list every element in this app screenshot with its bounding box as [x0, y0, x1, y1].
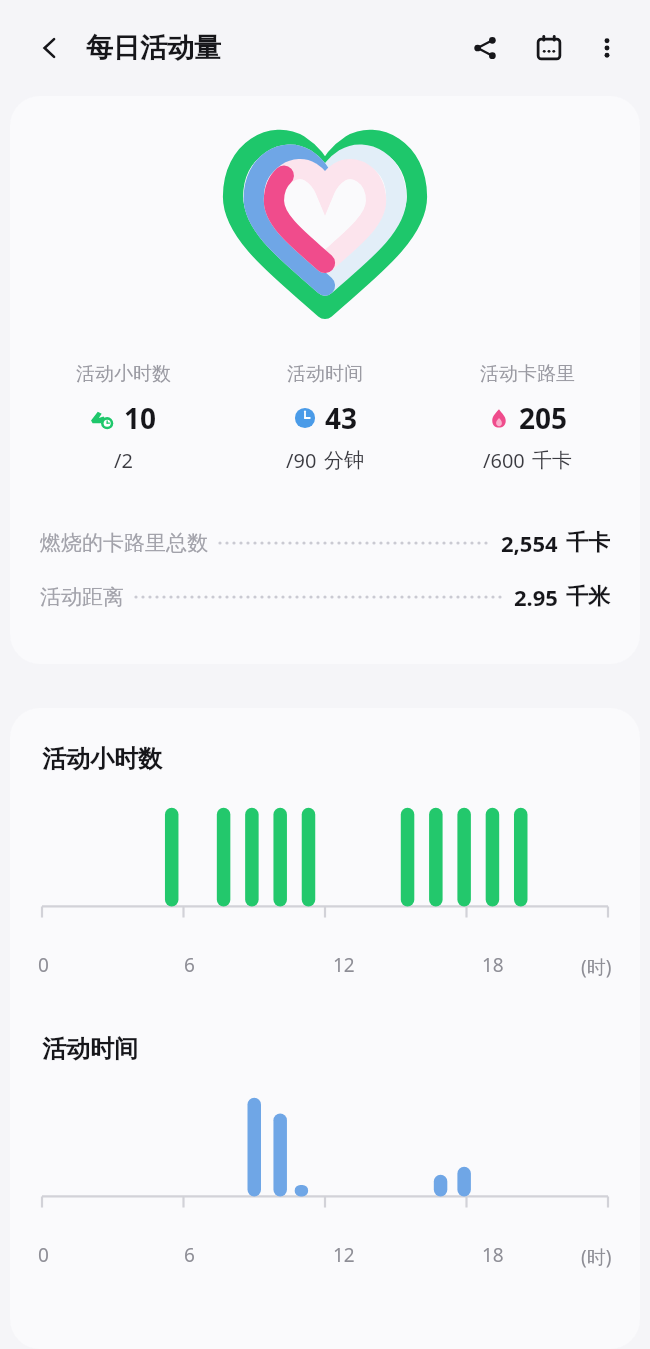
- staticText: 12: [333, 1242, 355, 1268]
- staticText: /2: [114, 447, 133, 474]
- staticText: 0: [38, 1242, 49, 1268]
- staticText: 6: [184, 1242, 195, 1268]
- staticText: 活动小时数: [76, 362, 171, 386]
- staticText: 每日活动量: [86, 31, 221, 65]
- staticText: 活动时间: [42, 1034, 138, 1064]
- staticText: 活动时间: [287, 362, 363, 386]
- staticText: 10: [124, 399, 157, 437]
- button[interactable]: Share: [462, 25, 508, 71]
- staticText: 燃烧的卡路里总数: [40, 530, 208, 556]
- button[interactable]: Calendar: [526, 25, 572, 71]
- staticText: 2.95: [514, 582, 558, 612]
- staticText: 18: [482, 1242, 504, 1268]
- staticText: (时): [581, 954, 612, 980]
- staticText: 千米: [566, 583, 610, 611]
- button[interactable]: Back: [28, 26, 72, 70]
- button[interactable]: 活动距离: [40, 570, 610, 624]
- staticText: 18: [482, 952, 504, 978]
- staticText: 2,554: [501, 528, 558, 558]
- button[interactable]: 活动小时数: [22, 362, 224, 474]
- staticText: 活动距离: [40, 584, 124, 610]
- button[interactable]: 活动时间: [224, 362, 426, 474]
- staticText: 活动小时数: [42, 744, 162, 774]
- staticText: 分钟: [324, 448, 364, 473]
- staticText: 活动卡路里: [480, 362, 575, 386]
- staticText: 6: [184, 952, 195, 978]
- button[interactable]: More options: [586, 27, 628, 69]
- staticText: (时): [581, 1244, 612, 1270]
- staticText: /600: [483, 447, 525, 474]
- staticText: 千卡: [566, 529, 610, 557]
- staticText: 0: [38, 952, 49, 978]
- staticText: 12: [333, 952, 355, 978]
- button[interactable]: 燃烧的卡路里总数: [40, 516, 610, 570]
- staticText: 205: [519, 399, 568, 437]
- button[interactable]: 活动卡路里: [426, 362, 628, 474]
- staticText: 43: [325, 399, 358, 437]
- staticText: 千卡: [532, 448, 572, 473]
- staticText: /90: [286, 447, 317, 474]
